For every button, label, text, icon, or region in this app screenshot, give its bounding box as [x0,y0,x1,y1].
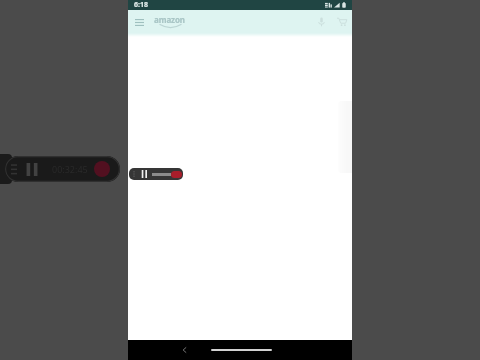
staticText: amazon [154,14,185,25]
button[interactable]: Stop recording [94,161,110,177]
button[interactable]: Home [211,349,272,351]
button[interactable]: Stop [129,168,183,180]
button[interactable]: amazon [154,14,185,25]
button[interactable]: Back [177,343,191,357]
staticText: 6:18 [134,0,148,10]
button[interactable]: Voice search [314,14,329,29]
staticText: 00:32:45 [52,163,88,175]
button[interactable]: Stop [171,171,182,178]
button[interactable]: Cart [334,14,349,29]
button[interactable]: Menu [131,14,147,30]
button[interactable]: 00:32:45 [5,156,120,182]
